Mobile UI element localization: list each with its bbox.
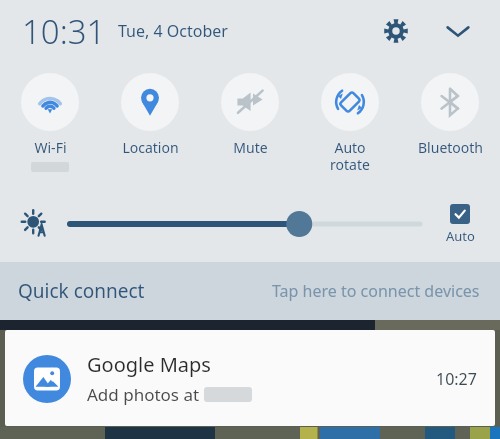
button[interactable]: Wi-Fi bbox=[0, 70, 100, 182]
staticText: 10:27 bbox=[436, 368, 477, 390]
button[interactable]: Settings bbox=[376, 11, 416, 51]
button[interactable]: Mute bbox=[200, 70, 300, 182]
button[interactable]: Google Maps bbox=[5, 330, 495, 426]
button[interactable]: Auto rotate bbox=[300, 70, 400, 182]
button[interactable]: Location bbox=[100, 70, 200, 182]
staticText: 10:31 bbox=[22, 9, 106, 54]
staticText: Google Maps bbox=[87, 351, 211, 378]
staticText: Auto rotate bbox=[330, 138, 370, 174]
button[interactable]: Bluetooth bbox=[400, 70, 500, 182]
staticText: Tue, 4 October bbox=[118, 20, 228, 42]
button[interactable]: Brightness slider bbox=[70, 204, 420, 244]
staticText: Location bbox=[122, 138, 179, 157]
staticText: Mute bbox=[233, 138, 268, 157]
staticText: Wi-Fi bbox=[34, 138, 67, 157]
staticText: Bluetooth bbox=[418, 138, 483, 157]
staticText: Quick connect bbox=[18, 278, 145, 304]
staticText: Auto bbox=[446, 227, 475, 245]
button[interactable]: Quick connect bbox=[0, 262, 500, 320]
button[interactable]: Auto brightness bbox=[18, 206, 54, 242]
button[interactable]: Auto bbox=[434, 204, 486, 245]
button[interactable]: Expand bbox=[438, 11, 478, 51]
staticText: Add photos at bbox=[87, 383, 204, 406]
staticText: Tap here to connect devices bbox=[272, 280, 480, 302]
